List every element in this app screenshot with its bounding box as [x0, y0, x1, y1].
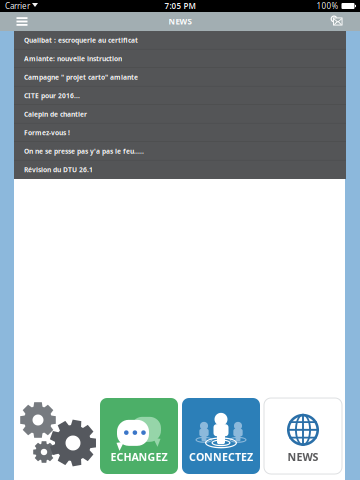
staticText: CITE pour 2016...: [24, 91, 80, 100]
staticText: On ne se presse pas y'a pas le feu.....: [24, 147, 144, 156]
button[interactable]: CITE pour 2016...: [14, 86, 346, 105]
button[interactable]: Messages: [325, 12, 351, 31]
button[interactable]: Calepin de chantier: [14, 105, 346, 123]
staticText: Formez-vous !: [24, 128, 70, 137]
button[interactable]: Formez-vous !: [14, 123, 346, 142]
staticText: Campagne " projet carto" amiante: [24, 73, 138, 82]
button[interactable]: Qualibat : escroquerie au certificat: [14, 31, 346, 49]
staticText: ECHANGEZ: [110, 450, 167, 464]
staticText: Carrier: [5, 1, 30, 11]
staticText: NEWS: [168, 16, 191, 27]
button[interactable]: Menu: [9, 12, 35, 31]
button[interactable]: NEWS: [264, 398, 342, 474]
staticText: NEWS: [287, 450, 318, 464]
button[interactable]: ECHANGEZ: [100, 398, 178, 474]
staticText: CONNECTEZ: [189, 450, 253, 464]
button[interactable]: Amiante: nouvelle instruction: [14, 49, 346, 68]
staticText: Amiante: nouvelle instruction: [24, 54, 122, 63]
staticText: 7:05 PM: [164, 1, 195, 11]
button[interactable]: Paramètres: [19, 398, 95, 474]
staticText: Qualibat : escroquerie au certificat: [24, 36, 138, 45]
button[interactable]: Révision du DTU 26.1: [14, 160, 346, 179]
button[interactable]: On ne se presse pas y'a pas le feu.....: [14, 142, 346, 160]
staticText: Révision du DTU 26.1: [24, 165, 93, 174]
staticText: Calepin de chantier: [24, 110, 87, 119]
button[interactable]: CONNECTEZ: [182, 398, 260, 474]
button[interactable]: Campagne " projet carto" amiante: [14, 68, 346, 86]
staticText: 100%: [316, 1, 338, 11]
